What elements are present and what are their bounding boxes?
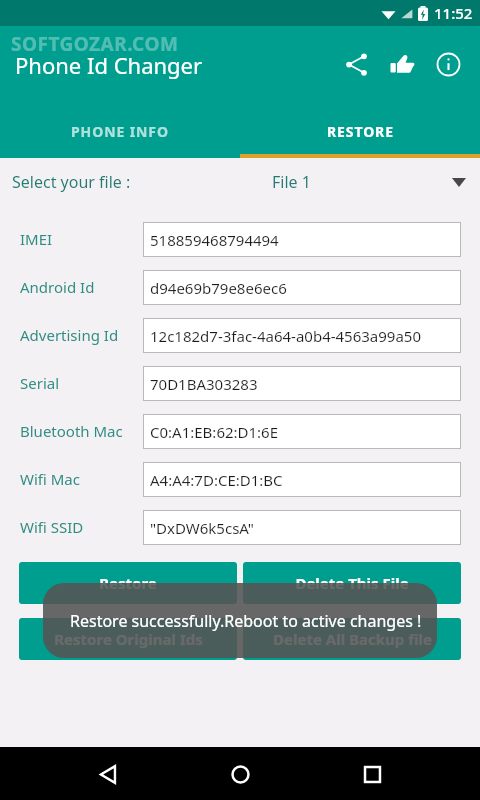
staticText: Advertising Id — [20, 325, 119, 345]
staticText: Restore Original Ids — [54, 629, 203, 649]
staticText: Delete All Backup file — [273, 629, 432, 649]
button[interactable]: PHONE INFO — [0, 105, 240, 158]
button[interactable]: "DxDW6k5csA" — [143, 510, 461, 545]
button[interactable]: d94e69b79e8e6ec6 — [143, 270, 461, 305]
staticText: File 1 — [272, 171, 311, 193]
staticText: Phone Id Changer — [15, 50, 203, 80]
button[interactable]: About — [425, 41, 471, 87]
staticText: Select your file : — [12, 171, 131, 193]
staticText: SOFTGOZAR.COM — [11, 31, 179, 57]
staticText: Delete This File — [295, 573, 409, 593]
staticText: Restore — [99, 573, 157, 593]
button[interactable]: 518859468794494 — [143, 222, 461, 257]
button[interactable]: 12c182d7-3fac-4a64-a0b4-4563a99a50 — [143, 318, 461, 353]
staticText: 11:52 — [434, 3, 473, 23]
button[interactable]: Share — [333, 41, 379, 87]
button[interactable]: Restore — [19, 562, 237, 604]
staticText: IMEI — [20, 229, 53, 249]
staticText: Wifi SSID — [20, 517, 84, 537]
staticText: A4:A4:7D:CE:D1:BC — [150, 470, 283, 490]
staticText: Wifi Mac — [20, 469, 80, 489]
staticText: 518859468794494 — [150, 230, 279, 250]
button[interactable]: RESTORE — [240, 105, 480, 158]
staticText: "DxDW6k5csA" — [150, 518, 254, 538]
button[interactable]: 70D1BA303283 — [143, 366, 461, 401]
button[interactable]: Back — [84, 750, 132, 798]
button[interactable]: A4:A4:7D:CE:D1:BC — [143, 462, 461, 497]
staticText: C0:A1:EB:62:D1:6E — [150, 422, 279, 442]
button[interactable]: Restore Original Ids — [19, 618, 237, 660]
button[interactable]: Home — [216, 750, 264, 798]
staticText: d94e69b79e8e6ec6 — [150, 278, 287, 298]
staticText: 12c182d7-3fac-4a64-a0b4-4563a99a50 — [150, 326, 422, 346]
staticText: Bluetooth Mac — [20, 421, 123, 441]
button[interactable]: Recent apps — [348, 750, 396, 798]
staticText: Restore successfully.Reboot to active ch… — [70, 610, 422, 632]
button[interactable]: C0:A1:EB:62:D1:6E — [143, 414, 461, 449]
button[interactable]: Rate this app — [379, 41, 425, 87]
staticText: PHONE INFO — [71, 122, 169, 141]
button[interactable]: Delete All Backup file — [243, 618, 461, 660]
staticText: Android Id — [20, 277, 95, 297]
staticText: 70D1BA303283 — [150, 374, 258, 394]
button[interactable]: Select your file : — [0, 158, 480, 206]
staticText: Serial — [20, 373, 60, 393]
button[interactable]: Delete This File — [243, 562, 461, 604]
staticText: RESTORE — [327, 122, 394, 141]
